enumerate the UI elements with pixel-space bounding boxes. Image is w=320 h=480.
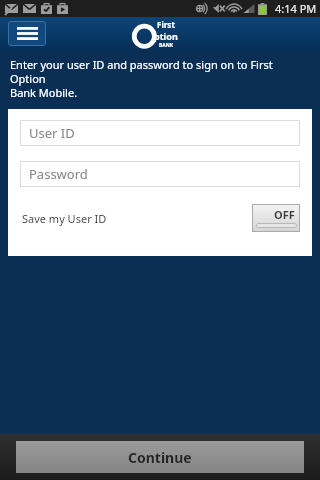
staticText: BANK [159,42,174,47]
staticText: 4:14 PM [275,1,317,16]
button[interactable]: User ID [20,120,300,146]
staticText: Password [29,165,88,183]
staticText: Enter your user ID and password to sign … [10,57,310,100]
staticText: ption [154,30,178,42]
button[interactable]: Save my User ID, off [252,204,300,232]
staticText: OFF [274,207,295,222]
button[interactable]: Continue [16,441,304,473]
staticText: First [157,19,175,30]
staticText: Save my User ID [22,211,107,226]
staticText: User ID [29,124,75,142]
button[interactable]: Password [20,161,300,187]
button[interactable]: Menu [8,21,46,46]
staticText: Continue [128,448,192,467]
